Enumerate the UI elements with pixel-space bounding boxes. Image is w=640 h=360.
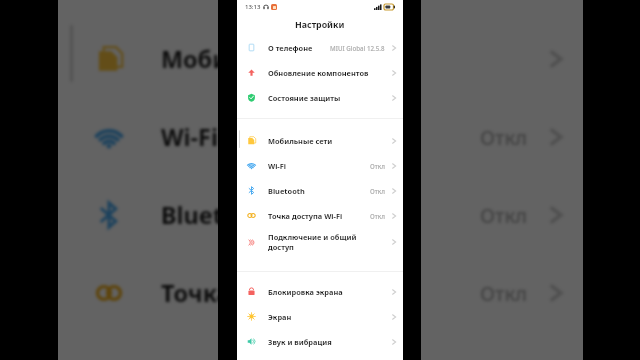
staticText: Блокировка экрана bbox=[268, 287, 343, 297]
staticText: Подключение и общий bbox=[268, 232, 357, 242]
staticText: Настройки bbox=[295, 19, 345, 31]
button[interactable]: Мобильные сети bbox=[237, 128, 403, 153]
button[interactable]: О телефоне bbox=[237, 35, 403, 60]
staticText: Wi-Fi bbox=[268, 161, 286, 171]
staticText: Точка доступа Wi-Fi bbox=[268, 211, 343, 221]
button[interactable]: Звук и вибрация bbox=[237, 329, 403, 354]
button[interactable]: Состояние защиты bbox=[237, 85, 403, 110]
staticText: Откл bbox=[480, 280, 528, 307]
button[interactable]: Подключение и общий bbox=[237, 226, 403, 258]
staticText: Обновление компонентов bbox=[268, 68, 369, 78]
staticText: Откл bbox=[480, 124, 528, 151]
button[interactable]: Экран bbox=[237, 304, 403, 329]
staticText: О телефоне bbox=[268, 43, 313, 53]
staticText: Экран bbox=[268, 312, 292, 322]
staticText: 13:13 bbox=[245, 3, 261, 11]
staticText: Состояние защиты bbox=[268, 93, 341, 103]
staticText: Откл bbox=[370, 162, 385, 170]
staticText: Звук и вибрация bbox=[268, 337, 332, 347]
button[interactable]: Wi-Fi bbox=[237, 153, 403, 178]
button[interactable]: Мобильные сети bbox=[63, 20, 583, 98]
button[interactable]: Подключение и общий bbox=[63, 341, 583, 360]
staticText: Откл bbox=[480, 202, 528, 229]
button[interactable]: Точка доступа Wi-Fi bbox=[237, 203, 403, 228]
button[interactable]: Обновление компонентов bbox=[237, 60, 403, 85]
staticText: Bluetooth bbox=[161, 199, 278, 231]
button[interactable]: Wi-Fi bbox=[63, 98, 583, 176]
staticText: Мобильные сети bbox=[161, 43, 365, 75]
staticText: Мобильные сети bbox=[268, 136, 333, 146]
staticText: Bluetooth bbox=[268, 186, 305, 196]
button[interactable]: Bluetooth bbox=[63, 176, 583, 254]
staticText: Wi-Fi bbox=[161, 121, 218, 153]
staticText: Точка доступа Wi-Fi bbox=[161, 277, 396, 309]
button[interactable]: Bluetooth bbox=[237, 178, 403, 203]
button[interactable]: Точка доступа Wi-Fi bbox=[63, 254, 583, 332]
staticText: доступ bbox=[268, 242, 294, 252]
staticText: MIUI Global 12.5.8 bbox=[330, 44, 385, 52]
staticText: Откл bbox=[370, 212, 385, 220]
button[interactable]: Блокировка экрана bbox=[237, 279, 403, 304]
staticText: Откл bbox=[370, 187, 385, 195]
